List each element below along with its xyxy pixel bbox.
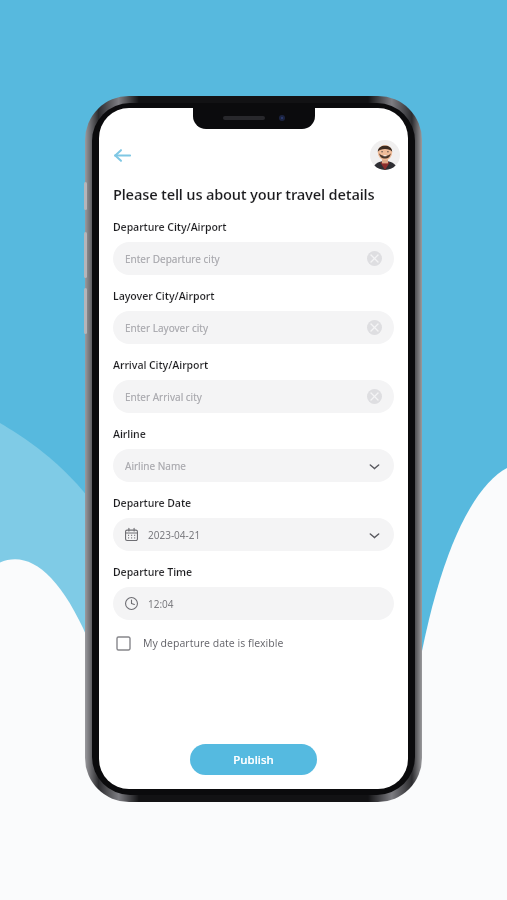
button[interactable]: Enter Departure city xyxy=(113,242,394,275)
button[interactable]: 2023-04-21 xyxy=(113,518,394,551)
staticText: Departure Time xyxy=(113,565,193,579)
staticText: Arrival City/Airport xyxy=(113,358,209,372)
button[interactable]: 12:04 xyxy=(113,587,394,620)
staticText: 2023-04-21 xyxy=(148,528,366,542)
button[interactable]: My departure date is flexible xyxy=(113,630,394,656)
button[interactable]: Enter Arrival city xyxy=(113,380,394,413)
button[interactable]: Profile xyxy=(370,140,400,170)
staticText: Enter Layover city xyxy=(125,321,367,335)
button[interactable]: Clear xyxy=(367,320,382,335)
staticText: Departure Date xyxy=(113,496,192,510)
staticText: Departure City/Airport xyxy=(113,220,227,234)
staticText: Enter Arrival city xyxy=(125,390,367,404)
button[interactable]: Airline Name xyxy=(113,449,394,482)
button[interactable]: Enter Layover city xyxy=(113,311,394,344)
staticText: My departure date is flexible xyxy=(143,636,284,650)
staticText: Airline Name xyxy=(125,459,366,473)
button[interactable]: Clear xyxy=(367,389,382,404)
button[interactable]: Clear xyxy=(367,251,382,266)
staticText: Publish xyxy=(233,752,274,768)
button[interactable]: Publish xyxy=(190,744,317,775)
button[interactable]: Open dropdown xyxy=(366,458,382,474)
staticText: Please tell us about your travel details xyxy=(113,184,375,204)
staticText: Enter Departure city xyxy=(125,252,367,266)
staticText: Airline xyxy=(113,427,146,441)
button[interactable]: Back xyxy=(105,138,139,172)
staticText: Layover City/Airport xyxy=(113,289,215,303)
button[interactable]: Open dropdown xyxy=(366,527,382,543)
staticText: 12:04 xyxy=(148,597,382,611)
